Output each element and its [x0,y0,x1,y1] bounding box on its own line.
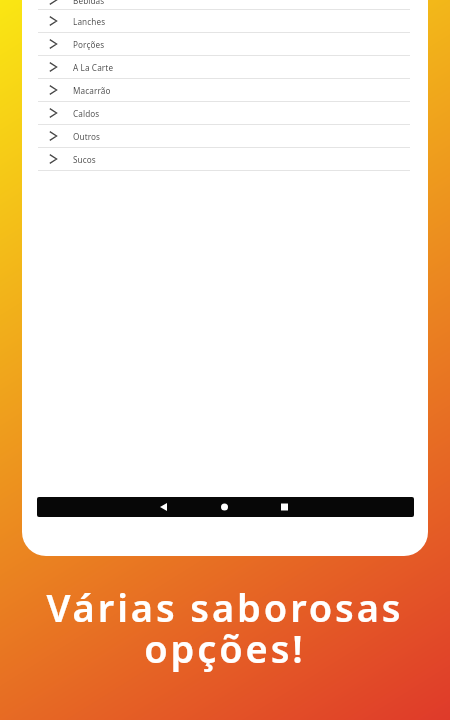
staticText: Várias saborosas [46,581,404,633]
staticText: Sucos [73,154,96,165]
button[interactable]: Outros [22,125,428,147]
staticText: Outros [73,131,101,142]
staticText: Caldos [73,108,100,119]
button[interactable]: Lanches [22,10,428,32]
button[interactable]: A La Carte [22,56,428,78]
staticText: Porções [73,39,105,50]
staticText: Lanches [73,16,106,27]
staticText: opções! [144,622,306,674]
button[interactable]: Sucos [22,148,428,170]
button[interactable] [37,497,414,517]
staticText: Bebidas [73,0,105,6]
button[interactable]: Bebidas [22,0,428,9]
staticText: A La Carte [73,62,114,73]
button[interactable]: Porções [22,33,428,55]
button[interactable]: Caldos [22,102,428,124]
button[interactable]: Macarrão [22,79,428,101]
staticText: Macarrão [73,85,111,96]
